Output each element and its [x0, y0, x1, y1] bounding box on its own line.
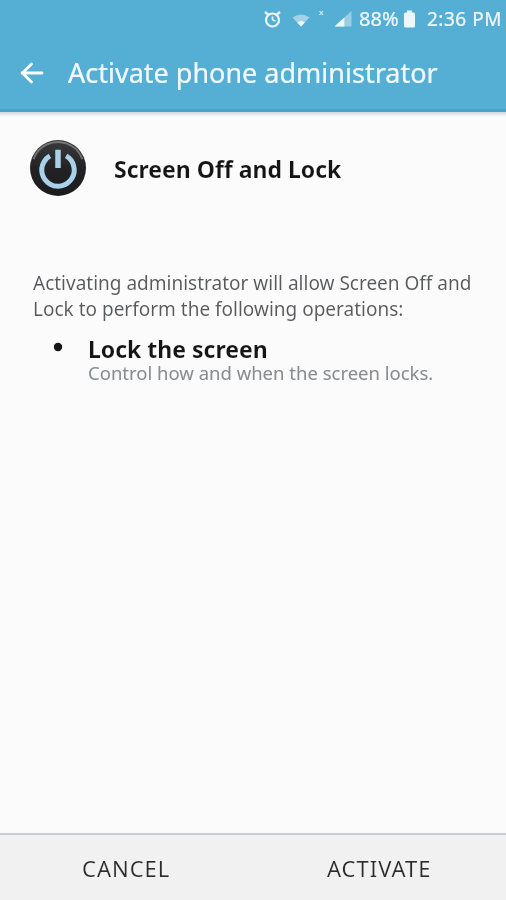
button[interactable]: [6, 47, 58, 99]
button[interactable]: ACTIVATE: [253, 835, 506, 900]
staticText: Activating administrator will allow Scre…: [33, 270, 472, 321]
staticText: CANCEL: [82, 853, 171, 883]
staticText: Lock the screen: [88, 333, 268, 364]
staticText: Activate phone administrator: [68, 54, 438, 91]
button[interactable]: CANCEL: [0, 835, 253, 900]
staticText: Screen Off and Lock: [114, 153, 342, 184]
staticText: ˣ: [319, 5, 324, 23]
staticText: 2:36 PM: [427, 6, 502, 32]
staticText: 88%: [359, 5, 399, 32]
staticText: Control how and when the screen locks.: [88, 360, 434, 385]
staticText: ACTIVATE: [327, 853, 432, 883]
